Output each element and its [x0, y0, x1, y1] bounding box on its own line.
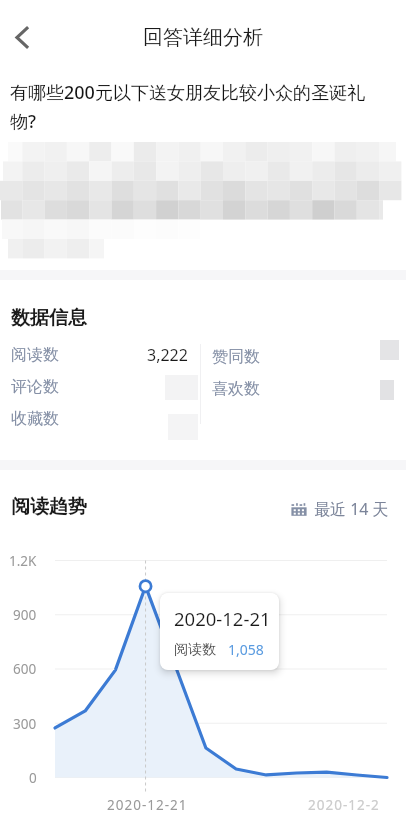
- button[interactable]: 赞同数: [212, 342, 392, 372]
- button[interactable]: 喜欢数: [212, 374, 392, 404]
- staticText: 阅读数: [174, 641, 216, 659]
- staticText: 0: [29, 769, 37, 787]
- staticText: 最近 14 天: [314, 498, 389, 518]
- staticText: 300: [13, 715, 37, 733]
- staticText: 600: [13, 660, 37, 678]
- button[interactable]: 阅读数: [0, 340, 200, 370]
- staticText: 3,222: [147, 344, 188, 366]
- staticText: 阅读数: [11, 345, 59, 365]
- staticText: 喜欢数: [212, 379, 260, 399]
- staticText: 数据信息: [11, 306, 87, 330]
- staticText: 赞同数: [212, 347, 260, 367]
- staticText: 评论数: [11, 377, 59, 397]
- staticText: 2020-12-2: [308, 796, 380, 814]
- staticText: 回答详细分析: [143, 25, 263, 50]
- button[interactable]: 最近 14 天: [291, 498, 389, 518]
- staticText: 900: [13, 606, 37, 624]
- staticText: 2020-12-21: [174, 606, 271, 631]
- staticText: 有哪些200元以下送女朋友比较小众的圣诞礼物?: [10, 80, 378, 133]
- staticText: 阅读趋势: [11, 495, 87, 519]
- staticText: 收藏数: [11, 409, 59, 429]
- staticText: 1.2K: [9, 552, 37, 570]
- button[interactable]: 收藏数: [0, 404, 200, 434]
- staticText: 1,058: [228, 640, 264, 659]
- button[interactable]: 评论数: [0, 372, 200, 402]
- staticText: 2020-12-21: [107, 796, 188, 814]
- button[interactable]: Back: [2, 15, 46, 59]
